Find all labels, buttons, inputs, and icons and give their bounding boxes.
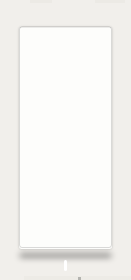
- button[interactable]: Home: [64, 260, 67, 271]
- button[interactable]: [19, 27, 112, 249]
